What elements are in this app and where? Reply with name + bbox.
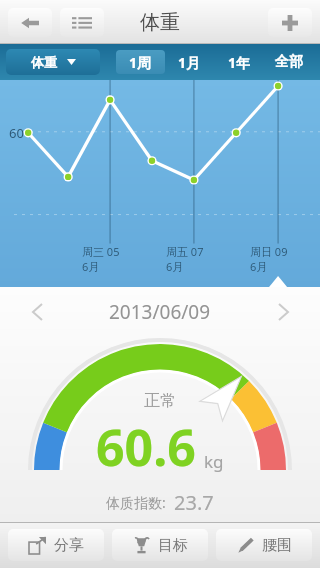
staticText: 6月 xyxy=(250,259,268,274)
staticText: 正常 xyxy=(144,391,176,411)
button[interactable]: 1月 xyxy=(165,50,214,74)
staticText: 60 xyxy=(9,124,24,142)
staticText: 1年 xyxy=(228,53,251,72)
staticText: 23.7 xyxy=(174,489,214,516)
staticText: 1月 xyxy=(178,53,201,72)
button[interactable]: List xyxy=(60,8,104,37)
staticText: kg xyxy=(204,450,224,473)
button[interactable]: 1年 xyxy=(214,50,264,74)
button[interactable]: 腰围 xyxy=(216,529,312,561)
staticText: 全部 xyxy=(275,53,303,71)
staticText: 目标 xyxy=(158,536,188,555)
staticText: 6月 xyxy=(166,259,184,274)
button[interactable]: 全部 xyxy=(264,50,314,74)
staticText: 体重 xyxy=(31,54,57,70)
staticText: 腰围 xyxy=(262,536,292,555)
staticText: 分享 xyxy=(54,536,84,555)
staticText: 1周 xyxy=(129,53,152,72)
staticText: 周日 09 xyxy=(250,244,306,259)
button[interactable]: 分享 xyxy=(8,529,104,561)
button[interactable]: 目标 xyxy=(112,529,208,561)
staticText: 周五 07 xyxy=(166,244,222,259)
button[interactable]: Previous day xyxy=(26,301,48,323)
staticText: 2013/06/09 xyxy=(109,299,211,325)
button[interactable]: Add xyxy=(268,8,312,37)
staticText: 60.6 xyxy=(96,413,196,481)
button[interactable]: 1周 xyxy=(116,50,165,74)
staticText: 6月 xyxy=(82,259,100,274)
staticText: 体质指数: xyxy=(106,493,166,512)
staticText: 周三 05 xyxy=(82,244,138,259)
staticText: 体重 xyxy=(140,10,180,35)
button[interactable]: Next day xyxy=(272,301,294,323)
button[interactable]: Back xyxy=(8,8,52,37)
button[interactable]: 体重 xyxy=(6,49,100,75)
